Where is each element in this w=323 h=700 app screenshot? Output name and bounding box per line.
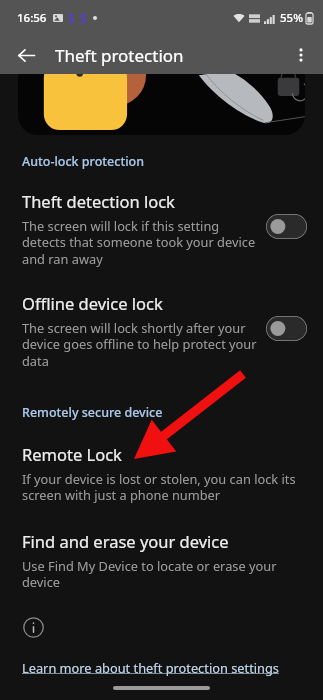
button[interactable]: Find and erase your device (0, 530, 323, 591)
staticText: 16:56 (17, 10, 47, 26)
staticText: Use Find My Device to locate or erase yo… (22, 557, 305, 591)
button[interactable]: Toggle (266, 214, 307, 239)
staticText: S (80, 10, 87, 26)
button[interactable]: Offline device lock (0, 292, 323, 370)
staticText: Theft protection (55, 44, 184, 67)
staticText: Remotely secure device (22, 404, 163, 421)
staticText: Theft detection lock (22, 190, 175, 212)
button[interactable]: Theft detection lock (0, 190, 323, 268)
staticText: Find and erase your device (22, 530, 229, 552)
staticText: S (68, 10, 75, 26)
staticText: The screen will lock shortly after your … (22, 319, 258, 370)
staticText: Auto-lock protection (22, 153, 145, 170)
button[interactable]: Learn more about theft protection settin… (22, 659, 279, 676)
staticText: If your device is lost or stolen, you ca… (22, 470, 305, 504)
button[interactable]: More options (285, 39, 317, 71)
staticText: Learn more about theft protection settin… (22, 659, 279, 676)
button[interactable]: Remote Lock (0, 443, 323, 504)
staticText: Remote Lock (22, 443, 122, 465)
staticText: Offline device lock (22, 292, 163, 314)
button[interactable]: Back (10, 39, 42, 71)
staticText: The screen will lock if this setting det… (22, 217, 258, 268)
staticText: 55% (280, 10, 303, 26)
button[interactable]: Information (21, 615, 45, 639)
button[interactable]: Toggle (266, 316, 307, 341)
